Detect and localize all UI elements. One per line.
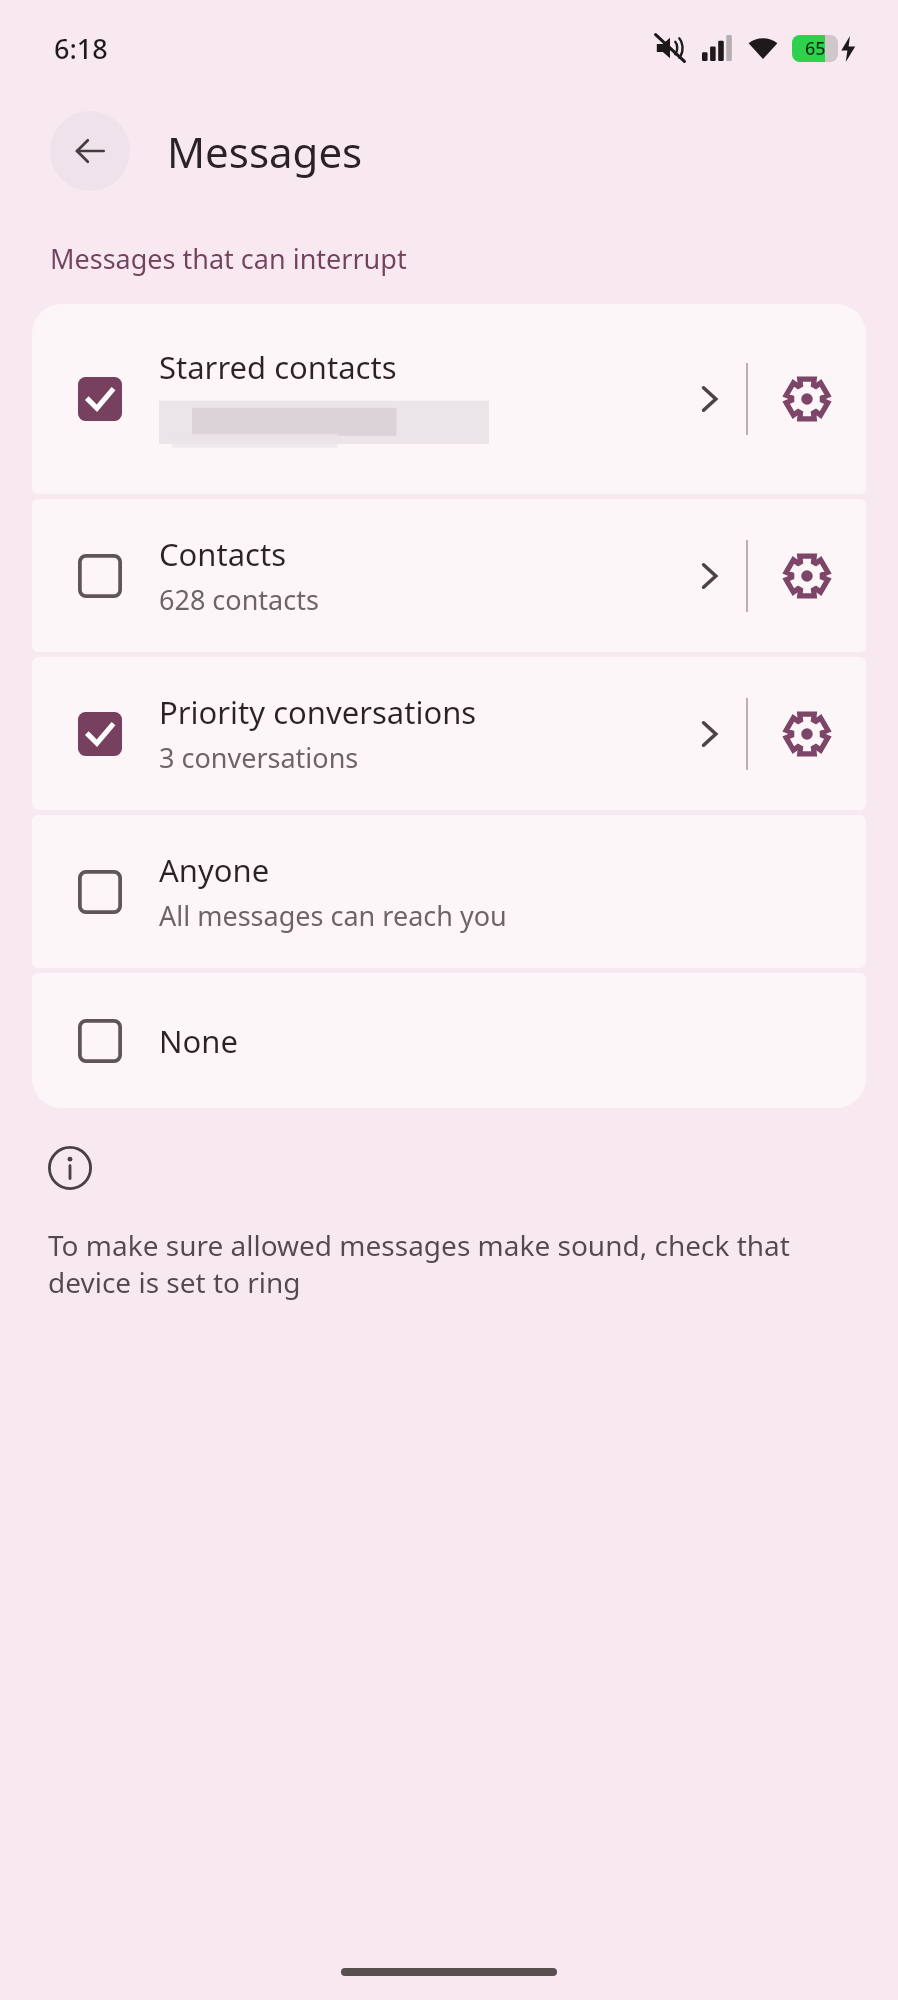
button[interactable]: Checked xyxy=(32,304,866,494)
staticText: Anyone xyxy=(159,849,270,891)
staticText: Messages xyxy=(167,123,363,180)
staticText: 628 contacts xyxy=(159,581,319,618)
button[interactable]: Unchecked xyxy=(32,973,866,1108)
button[interactable]: Contacts settings xyxy=(748,499,866,652)
button[interactable]: Unchecked xyxy=(32,499,866,652)
button[interactable]: Unchecked xyxy=(77,1018,123,1064)
staticText: Priority conversations xyxy=(159,691,477,733)
button[interactable]: Unchecked xyxy=(77,553,123,599)
staticText: All messages can reach you xyxy=(159,897,507,934)
staticText: 65 xyxy=(805,36,826,61)
staticText: Contacts xyxy=(159,533,287,575)
staticText: To make sure allowed messages make sound… xyxy=(48,1226,850,1301)
button[interactable]: Unchecked xyxy=(32,815,866,968)
button[interactable]: Checked xyxy=(77,711,123,757)
button[interactable]: Priority conversations settings xyxy=(748,657,866,810)
staticText: 3 conversations xyxy=(159,739,359,776)
button[interactable]: Checked xyxy=(77,376,123,422)
button[interactable]: Unchecked xyxy=(77,869,123,915)
button[interactable]: Open Contacts xyxy=(672,499,746,652)
button[interactable]: Open Priority conversations xyxy=(672,657,746,810)
button[interactable]: Back xyxy=(50,111,130,191)
button[interactable]: Starred contacts settings xyxy=(748,304,866,494)
staticText: Starred contacts xyxy=(159,346,397,388)
button[interactable]: Open Starred contacts xyxy=(672,304,746,494)
staticText: 6:18 xyxy=(54,30,108,67)
staticText: None xyxy=(159,1020,238,1062)
staticText: Messages that can interrupt xyxy=(50,240,407,277)
button[interactable]: Checked xyxy=(32,657,866,810)
